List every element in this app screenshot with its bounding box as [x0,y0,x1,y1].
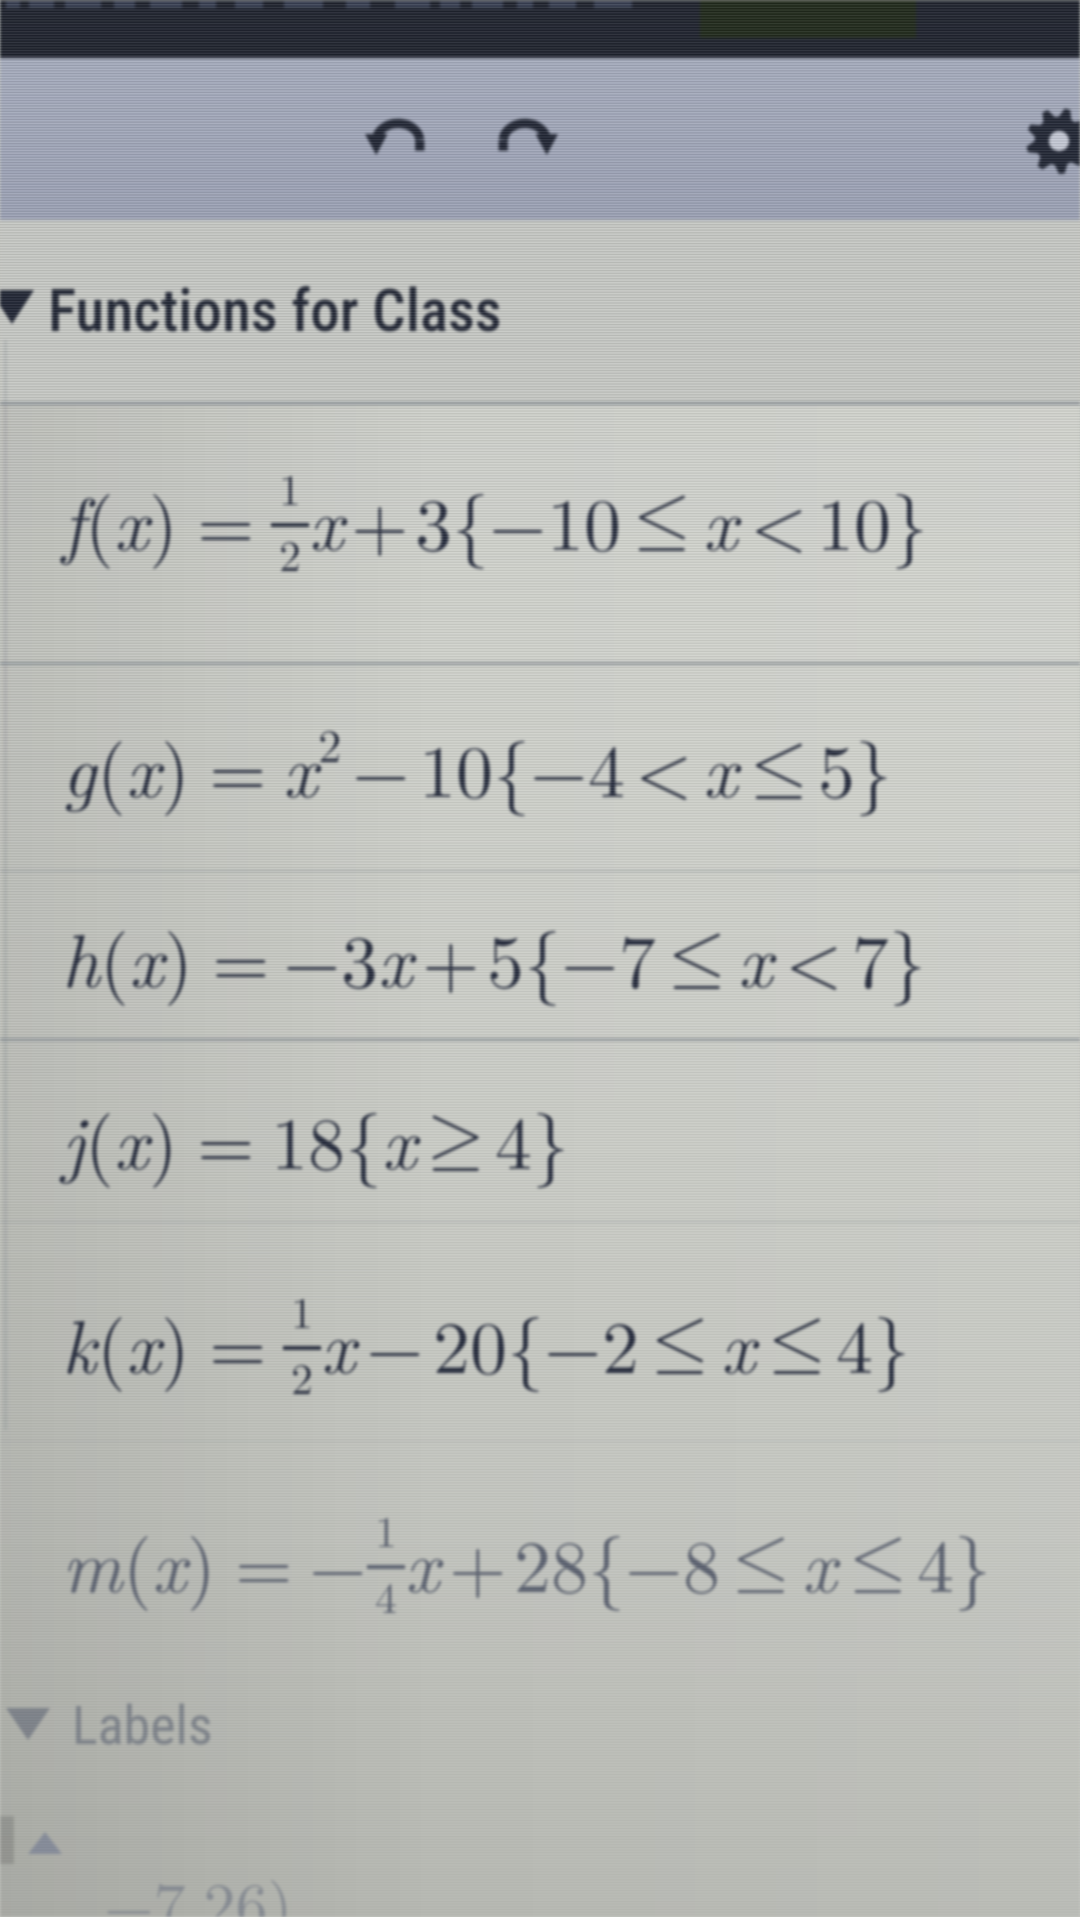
staticText: ≤ [633,482,691,556]
staticText: 7 [619,904,656,1009]
staticText: 7} [852,904,926,1009]
staticText: 4} [917,1509,991,1614]
staticText: k [62,1290,97,1395]
staticText: g [62,714,97,819]
staticText: x [405,1509,440,1614]
staticText: − [489,467,547,572]
staticText: = [235,1509,293,1614]
staticText: f [62,467,85,572]
staticText: + [449,1509,507,1614]
staticText: 1 [375,1497,397,1559]
staticText: 4} [836,1290,910,1395]
staticText: 8 [683,1509,720,1614]
staticText: ( [100,904,129,1009]
staticText: − [309,1509,367,1614]
staticText: ) [149,1086,178,1191]
staticText: m [62,1509,123,1614]
staticText: 4} [495,1086,569,1191]
staticText: x [721,1290,756,1395]
staticText: x [382,1086,417,1191]
staticText: ) [161,714,190,819]
staticText: x [114,467,149,572]
button[interactable]: m [0,1452,1080,1667]
staticText: − [561,904,619,1009]
staticText: = [212,904,270,1009]
staticText: x [309,467,344,572]
staticText: − [530,714,588,819]
button[interactable]: Labels [0,1680,1080,1790]
staticText: x [152,1509,187,1614]
button[interactable]: k [0,1242,1080,1452]
staticText: x [802,1509,837,1614]
staticText: x [703,467,738,572]
staticText: − [366,1290,424,1395]
staticText: ≤ [668,920,726,994]
staticText: −7.26) [104,1856,293,1917]
staticText: 1 [279,455,301,517]
staticText: 3 [341,904,378,1009]
staticText: 10 [547,467,621,572]
staticText: < [785,904,843,1009]
staticText: < [750,467,808,572]
staticText: Functions for Class [48,276,502,345]
staticText: 2 [279,521,301,583]
staticText: 3{ [415,467,489,572]
staticText: 1 [291,1278,313,1340]
staticText: 5{ [487,904,561,1009]
staticText: ) [161,1290,190,1395]
staticText: ≤ [651,1305,709,1379]
staticText: x [126,714,161,819]
staticText: − [544,1290,602,1395]
staticText: 2 [602,1290,639,1395]
staticText: 2 [318,709,342,776]
staticText: < [635,714,693,819]
staticText: 4 [375,1563,397,1625]
staticText: ≤ [750,730,808,804]
staticText: − [283,904,341,1009]
staticText: 5} [818,714,892,819]
staticText: − [352,714,410,819]
staticText: x [321,1290,356,1395]
button[interactable]: h [0,870,1080,1038]
staticText: 28{ [514,1509,625,1614]
staticText: ( [97,714,126,819]
staticText: j [62,1086,85,1191]
staticText: = [197,467,255,572]
button[interactable]: Settings [1002,86,1080,180]
staticText: x [703,714,738,819]
staticText: 10{ [419,714,530,819]
staticText: x [129,904,164,1009]
staticText: 2 [291,1344,313,1406]
staticText: 10} [817,467,928,572]
staticText: h [62,904,100,1009]
button[interactable]: Redo [474,86,582,178]
button[interactable]: Undo [347,86,455,178]
staticText: ) [164,904,193,1009]
staticText: x [283,714,318,819]
staticText: x [126,1290,161,1395]
staticText: ≤ [768,1305,826,1379]
staticText: 4 [588,714,625,819]
button[interactable]: g [0,662,1080,870]
staticText: = [209,1290,267,1395]
staticText: ≤ [849,1524,907,1598]
button[interactable]: j [0,1038,1080,1242]
staticText: ( [123,1509,152,1614]
staticText: ≥ [427,1102,485,1176]
staticText: − [625,1509,683,1614]
staticText: 18{ [271,1086,382,1191]
staticText: ( [97,1290,126,1395]
button[interactable]: Functions for Class [0,220,1080,402]
staticText: ≤ [732,1524,790,1598]
staticText: + [351,467,409,572]
staticText: x [378,904,413,1009]
staticText: ( [85,1086,114,1191]
button[interactable]: f [0,402,1080,662]
staticText: + [422,904,480,1009]
staticText: Labels [72,1694,213,1757]
staticText: x [738,904,773,1009]
staticText: ) [187,1509,216,1614]
staticText: ( [85,467,114,572]
staticText: x [114,1086,149,1191]
staticText: = [197,1086,255,1191]
